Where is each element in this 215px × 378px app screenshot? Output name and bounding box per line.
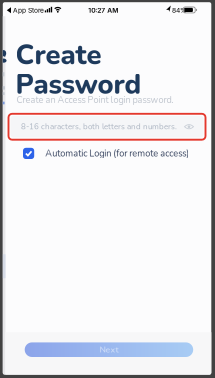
staticText: Create <box>15 37 101 74</box>
staticText: 10:27 AM <box>88 6 118 14</box>
staticText: App Store <box>13 6 44 14</box>
button[interactable]: Back to App Store <box>6 6 44 14</box>
button[interactable]: Show password <box>184 124 194 130</box>
staticText: Automatic Login (for remote access) <box>45 147 189 160</box>
staticText: Create an Access Point login password. <box>16 94 173 106</box>
button[interactable]: Next <box>25 342 193 357</box>
staticText: 8-16 characters, both letters and number… <box>21 121 177 132</box>
staticText: 84% <box>172 6 187 14</box>
staticText: Next <box>99 344 118 356</box>
button[interactable]: Password <box>10 116 203 137</box>
button[interactable]: Automatic Login (for remote access) <box>23 147 189 160</box>
staticText: Password <box>15 66 141 103</box>
